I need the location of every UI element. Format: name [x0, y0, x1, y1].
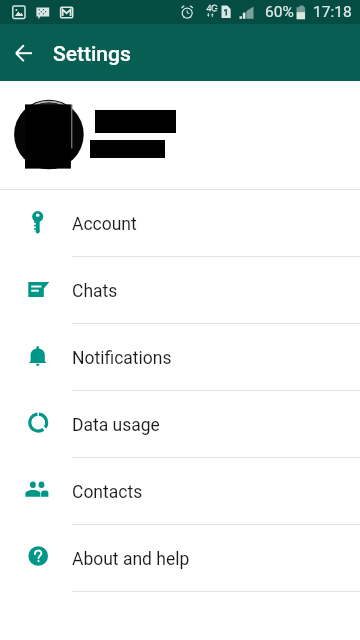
- staticText: Notifications: [72, 348, 172, 369]
- staticText: About and help: [72, 549, 190, 570]
- button[interactable]: Account: [0, 190, 360, 257]
- staticText: 17:18: [313, 3, 352, 21]
- button[interactable]: Notifications: [0, 324, 360, 391]
- staticText: Chats: [72, 281, 118, 302]
- button[interactable]: About and help: [0, 525, 360, 592]
- button[interactable]: Back: [8, 37, 40, 69]
- button[interactable]: Chats: [0, 257, 360, 324]
- button[interactable]: Contacts: [0, 458, 360, 525]
- button[interactable]: [0, 81, 360, 189]
- staticText: Settings: [53, 42, 131, 67]
- staticText: Data usage: [72, 415, 160, 436]
- staticText: Account: [72, 214, 137, 235]
- staticText: Contacts: [72, 482, 143, 503]
- button[interactable]: Data usage: [0, 391, 360, 458]
- staticText: 60%: [265, 3, 294, 21]
